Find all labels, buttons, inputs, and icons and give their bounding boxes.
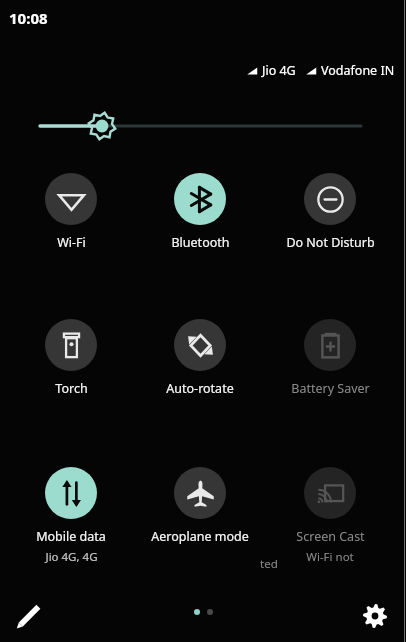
button[interactable]: Screen Cast xyxy=(268,467,392,565)
button[interactable]: Mobile data xyxy=(9,467,133,565)
button[interactable]: Wi-Fi xyxy=(9,173,133,251)
button[interactable]: Edit tiles xyxy=(8,596,48,636)
staticText: Wi-Fi xyxy=(57,234,86,251)
button[interactable]: Aeroplane mode xyxy=(138,467,262,545)
staticText: Wi-Fi not xyxy=(306,549,354,565)
button[interactable]: Settings xyxy=(355,596,395,636)
staticText: Auto-rotate xyxy=(166,380,234,397)
staticText: Torch xyxy=(55,380,88,397)
button[interactable]: Auto-rotate xyxy=(138,319,262,397)
staticText: Screen Cast xyxy=(296,528,365,545)
staticText: Aeroplane mode xyxy=(151,528,249,545)
staticText: Vodafone IN xyxy=(321,62,395,79)
staticText: Jio 4G, 4G xyxy=(45,549,98,565)
button[interactable]: Battery Saver xyxy=(268,319,392,397)
staticText: Mobile data xyxy=(36,528,106,545)
staticText: Battery Saver xyxy=(291,380,370,397)
staticText: ted xyxy=(260,556,278,572)
staticText: 10:08 xyxy=(9,8,48,28)
button[interactable]: Do Not Disturb xyxy=(268,173,392,251)
button[interactable]: Brightness xyxy=(0,112,406,140)
staticText: Jio 4G xyxy=(262,62,296,79)
staticText: Do Not Disturb xyxy=(286,234,375,251)
button[interactable]: Bluetooth xyxy=(138,173,262,251)
button[interactable]: Torch xyxy=(9,319,133,397)
staticText: Bluetooth xyxy=(171,234,230,251)
